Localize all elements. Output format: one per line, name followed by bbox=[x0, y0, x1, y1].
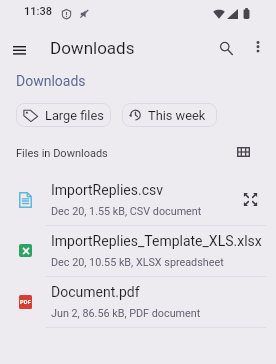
staticText: Downloads bbox=[50, 38, 135, 58]
staticText: PDF bbox=[20, 299, 31, 306]
button[interactable]: Large files bbox=[16, 103, 111, 127]
button[interactable]: ImportReplies.csv bbox=[0, 174, 276, 225]
button[interactable]: Downloads bbox=[12, 68, 90, 94]
staticText: ImportReplies.csv bbox=[51, 182, 163, 198]
staticText: ImportReplies_Template_XLS.xlsx bbox=[51, 233, 262, 249]
button[interactable]: Navigation menu bbox=[6, 37, 33, 64]
staticText: 11:38 bbox=[24, 5, 52, 18]
staticText: Files in Downloads bbox=[16, 147, 108, 160]
button[interactable]: Expand bbox=[238, 187, 263, 212]
staticText: Large files bbox=[45, 108, 104, 123]
staticText: Dec 20, 1.55 kB, CSV document bbox=[51, 205, 202, 218]
button[interactable]: More options bbox=[245, 34, 271, 60]
staticText: Jun 2, 86.56 kB, PDF document bbox=[51, 307, 201, 320]
button[interactable]: ImportReplies_Template_XLS.xlsx bbox=[0, 225, 276, 276]
staticText: Dec 20, 10.55 kB, XLSX spreadsheet bbox=[51, 256, 224, 269]
button[interactable]: Search bbox=[212, 34, 240, 62]
staticText: This week bbox=[148, 108, 206, 123]
button[interactable]: PDF bbox=[0, 276, 276, 327]
staticText: Document.pdf bbox=[51, 284, 140, 300]
staticText: Downloads bbox=[16, 73, 86, 89]
button[interactable]: Grid view bbox=[231, 140, 255, 164]
button[interactable]: This week bbox=[122, 103, 217, 127]
